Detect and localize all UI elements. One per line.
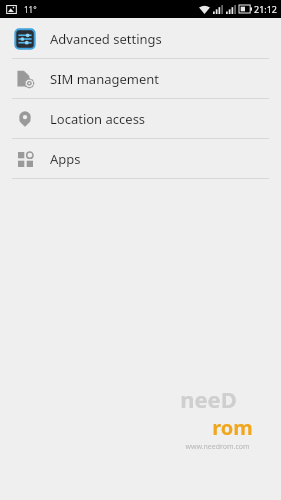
button[interactable]: Advanced settings [0, 19, 281, 58]
button[interactable]: Location access [0, 99, 281, 138]
staticText: neeD [180, 384, 237, 414]
button[interactable]: SIM management [0, 59, 281, 98]
staticText: 21:12 [254, 3, 278, 15]
staticText: Location access [50, 110, 146, 128]
staticText: Apps [50, 150, 81, 168]
staticText: www.needrom.com [185, 442, 250, 452]
staticText: 11° [24, 4, 37, 15]
button[interactable]: Apps [0, 139, 281, 178]
staticText: rom [212, 414, 253, 441]
staticText: Advanced settings [50, 30, 162, 48]
staticText: SIM management [50, 70, 160, 88]
